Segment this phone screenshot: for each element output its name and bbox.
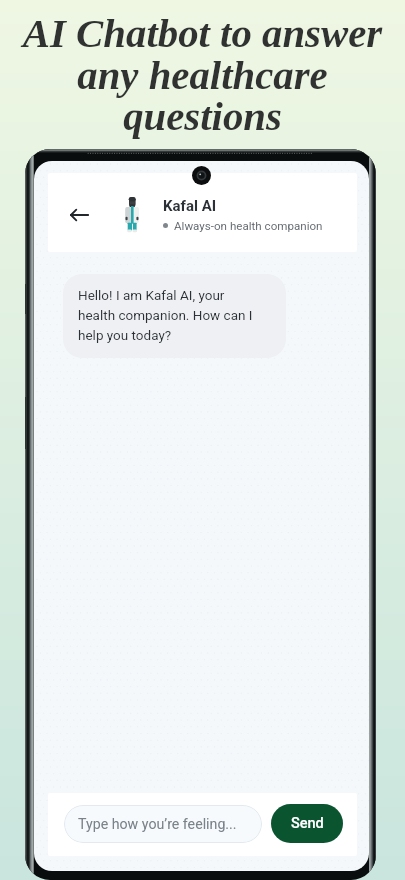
staticText: Type how you’re feeling...	[78, 816, 237, 833]
staticText: Kafal AI	[163, 197, 217, 215]
button[interactable]: Type how you’re feeling...	[64, 805, 262, 843]
button[interactable]: Send	[271, 804, 343, 843]
staticText: Always-on health companion	[174, 219, 323, 233]
button[interactable]: Back	[61, 199, 97, 231]
staticText: Send	[291, 815, 324, 832]
staticText: AI Chatbot to answer any healthcare ques…	[0, 11, 405, 139]
button[interactable]: Back	[48, 173, 357, 252]
staticText: Hello! I am Kafal AI, your health compan…	[78, 287, 264, 343]
